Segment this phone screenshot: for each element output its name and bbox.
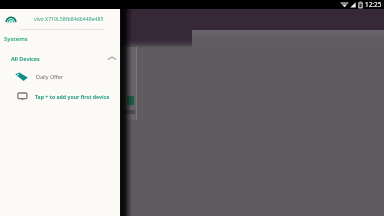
staticText: Systems <box>4 35 28 43</box>
button[interactable]: All Devices <box>0 50 121 67</box>
other: Mobile signal <box>350 1 356 8</box>
other: Wi-Fi connected <box>340 1 349 8</box>
staticText: All Devices <box>11 55 40 62</box>
staticText: Daily Offer <box>36 73 64 80</box>
staticText: Tap + to add your first device <box>35 93 110 100</box>
button[interactable]: Tap + to add your first device <box>0 87 121 105</box>
staticText: vivo X710L58fb84d6448e485 <box>34 15 104 22</box>
button[interactable]: vivo X710L58fb84d6448e485 <box>0 8 121 28</box>
button[interactable]: Daily Offer <box>0 67 121 85</box>
other: Battery <box>358 1 363 9</box>
staticText: 12:25 <box>365 0 382 9</box>
